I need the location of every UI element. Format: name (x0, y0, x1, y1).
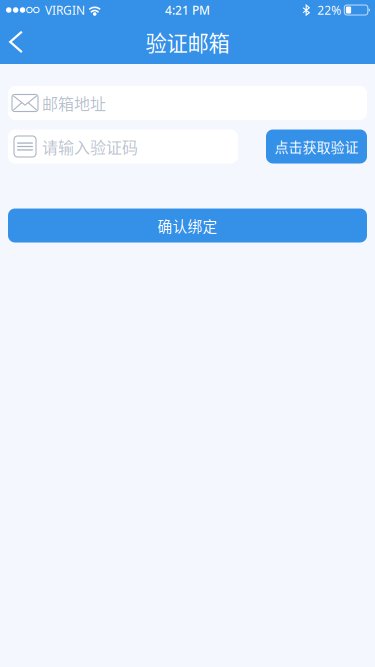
button[interactable]: Back (0, 20, 36, 64)
staticText: 确认绑定 (157, 215, 217, 236)
button[interactable]: 点击获取验证 (266, 129, 367, 163)
staticText: 4:21 PM (165, 2, 210, 18)
staticText: VIRGIN (45, 2, 85, 18)
staticText: 点击获取验证 (274, 136, 358, 157)
staticText: 请输入验证码 (42, 135, 138, 158)
staticText: 邮箱地址 (42, 91, 106, 115)
staticText: 22% (317, 2, 341, 18)
button[interactable]: 确认绑定 (8, 208, 367, 242)
staticText: 验证邮箱 (145, 27, 229, 57)
